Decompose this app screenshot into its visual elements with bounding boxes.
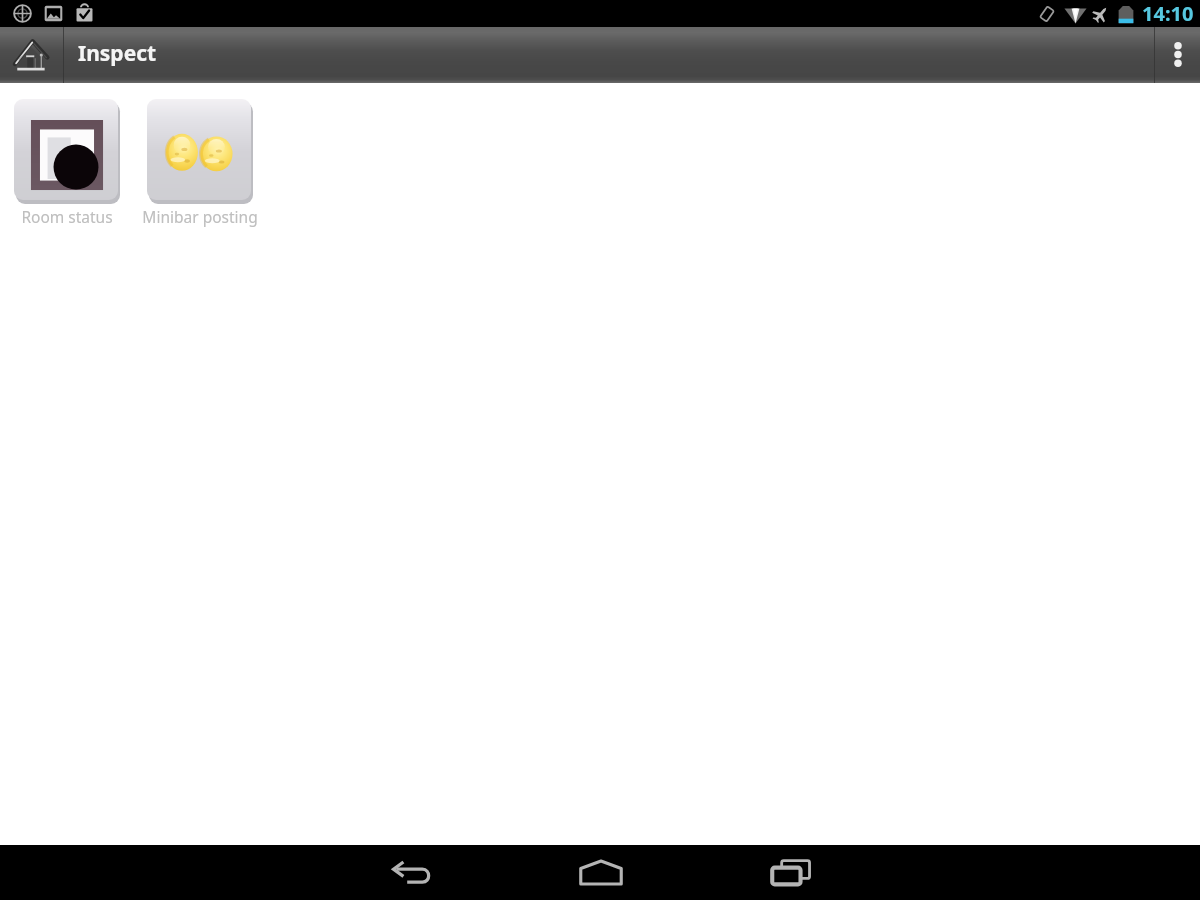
button[interactable]: Recent apps: [696, 845, 886, 900]
button[interactable]: Minibar posting: [147, 99, 253, 204]
staticText: Minibar posting: [142, 206, 258, 227]
button[interactable]: Home: [506, 845, 696, 900]
button[interactable]: Home: [0, 27, 63, 83]
staticText: 14:10: [1142, 0, 1194, 27]
button[interactable]: Back: [316, 845, 506, 900]
staticText: Inspect: [78, 39, 157, 68]
staticText: Room status: [21, 206, 113, 227]
button[interactable]: More options: [1155, 27, 1200, 83]
button[interactable]: Room status: [14, 99, 120, 204]
